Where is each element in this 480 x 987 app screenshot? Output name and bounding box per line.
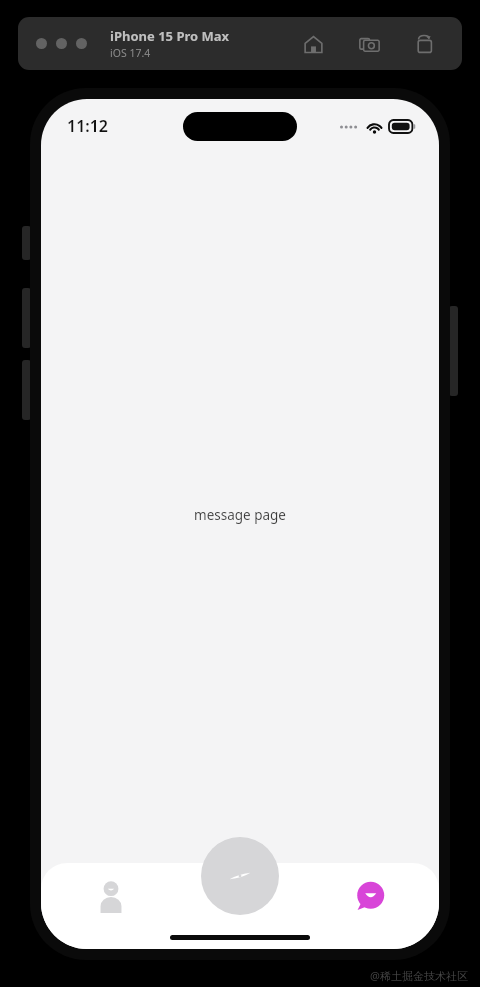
button[interactable]: Profile xyxy=(85,871,137,923)
button[interactable]: Messages xyxy=(343,871,395,923)
staticText: message page xyxy=(194,506,286,524)
staticText: @稀土掘金技术社区 xyxy=(370,968,468,983)
button[interactable] xyxy=(36,38,47,49)
staticText: iOS 17.4 xyxy=(110,46,151,60)
button[interactable]: Home xyxy=(298,29,328,59)
button[interactable] xyxy=(56,38,67,49)
staticText: 11:12 xyxy=(67,115,109,137)
button[interactable]: Screenshot xyxy=(354,29,384,59)
button[interactable]: Rotate xyxy=(410,29,440,59)
button[interactable]: Discover xyxy=(201,837,279,915)
button[interactable] xyxy=(76,38,87,49)
staticText: iPhone 15 Pro Max xyxy=(110,27,230,45)
